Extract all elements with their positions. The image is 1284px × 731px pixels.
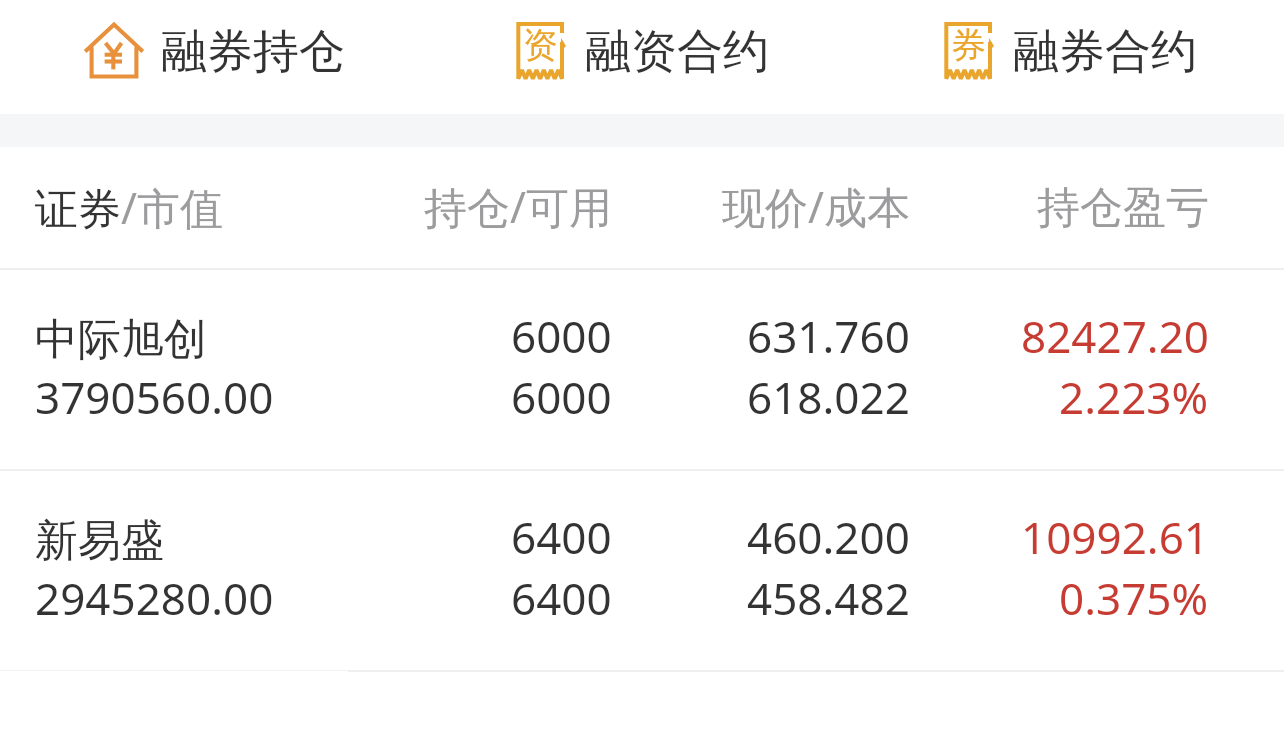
staticText: 10992.61 — [1021, 507, 1209, 567]
button[interactable]: 融券持仓 — [0, 0, 428, 114]
staticText: 现价/成本 — [722, 177, 910, 236]
staticText: 融券持仓 — [161, 23, 345, 81]
staticText: 2945280.00 — [35, 568, 274, 628]
other: 融券合约 — [944, 22, 996, 81]
other: 融券持仓 — [84, 23, 144, 79]
staticText: 631.760 — [747, 306, 910, 366]
staticText: 6400 — [511, 568, 612, 628]
button[interactable]: 融资合约 — [428, 0, 856, 114]
staticText: 融资合约 — [585, 23, 769, 81]
staticText: 6000 — [511, 367, 612, 427]
staticText: 460.200 — [747, 507, 910, 567]
staticText: 新易盛 — [35, 514, 164, 568]
staticText: 0.375% — [1059, 568, 1209, 628]
button[interactable]: 中际旭创 — [0, 268, 1284, 469]
staticText: 持仓/可用 — [424, 177, 612, 236]
staticText: 融券合约 — [1013, 23, 1197, 81]
staticText: 资 — [523, 23, 558, 67]
staticText: 618.022 — [747, 367, 910, 427]
staticText: 82427.20 — [1021, 306, 1209, 366]
other: 融资合约 — [516, 22, 568, 81]
staticText: 中际旭创 — [35, 313, 207, 367]
staticText: 6400 — [511, 507, 612, 567]
staticText: 6000 — [511, 306, 612, 366]
button[interactable]: 融券合约 — [856, 0, 1284, 114]
staticText: 证券/市值 — [35, 178, 223, 237]
staticText: 3790560.00 — [35, 367, 274, 427]
staticText: 券 — [951, 23, 986, 67]
staticText: 458.482 — [747, 568, 910, 628]
staticText: 持仓盈亏 — [1037, 181, 1209, 235]
button[interactable]: 新易盛 — [0, 469, 1284, 670]
staticText: 2.223% — [1059, 367, 1209, 427]
